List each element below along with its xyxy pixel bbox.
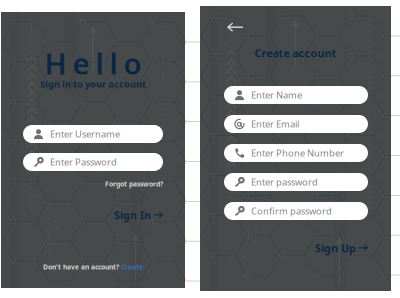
- staticText: Don't have an account?: [43, 263, 119, 271]
- staticText: Enter Email: [251, 118, 299, 130]
- staticText: Hello: [44, 43, 141, 82]
- button[interactable]: Enter Username: [23, 125, 163, 143]
- staticText: Enter Phone Number: [251, 147, 344, 159]
- button[interactable]: Confirm password: [224, 202, 368, 220]
- button[interactable]: Enter password: [224, 173, 368, 191]
- button[interactable]: Sign In: [114, 208, 164, 222]
- staticText: Forgot password?: [105, 180, 163, 188]
- button[interactable]: Sign Up: [315, 241, 369, 255]
- button[interactable]: Enter Name: [224, 86, 368, 104]
- staticText: Enter password: [251, 176, 318, 188]
- staticText: Sign In: [114, 208, 151, 222]
- staticText: Create: [119, 263, 143, 271]
- button[interactable]: Enter Phone Number: [224, 144, 368, 162]
- button[interactable]: Back: [222, 20, 248, 34]
- staticText: Enter Username: [50, 128, 120, 140]
- staticText: Sign Up: [315, 241, 356, 255]
- staticText: Enter Name: [251, 89, 302, 101]
- button[interactable]: Create: [119, 263, 143, 271]
- staticText: Enter Password: [50, 156, 117, 168]
- staticText: Sign in to your account: [40, 78, 146, 90]
- button[interactable]: Enter Email: [224, 115, 368, 133]
- staticText: Confirm password: [251, 205, 332, 217]
- staticText: Create account: [254, 46, 336, 60]
- button[interactable]: Enter Password: [23, 153, 163, 171]
- button[interactable]: Forgot password?: [93, 179, 163, 189]
